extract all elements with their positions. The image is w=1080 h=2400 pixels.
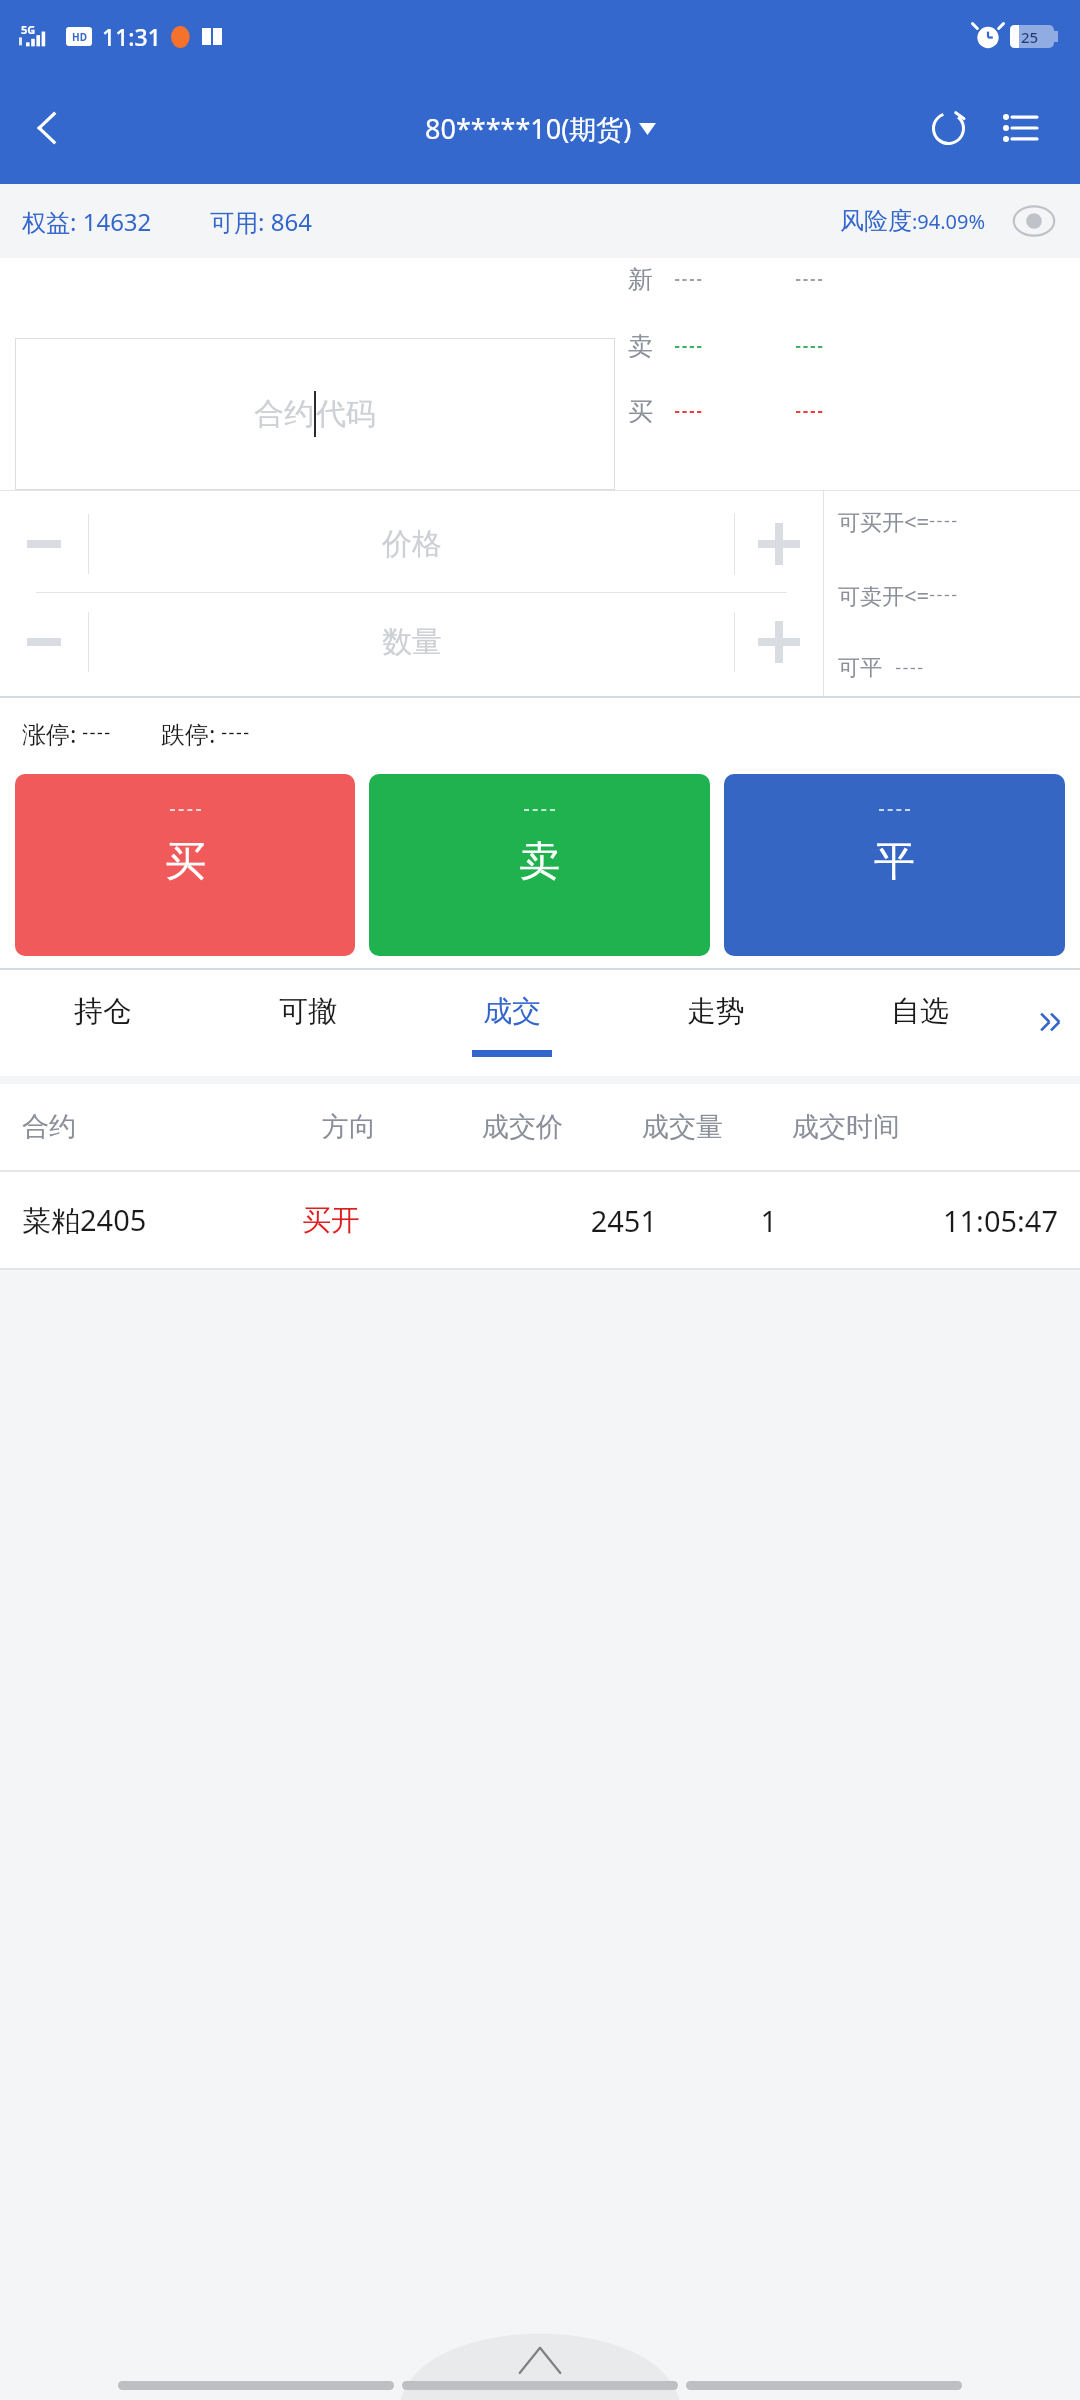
staticText: 持仓 — [74, 993, 132, 1030]
button[interactable]: 80*****10(期货) — [425, 110, 656, 147]
staticText: 涨停: — [22, 717, 77, 750]
staticText: 数量 — [382, 623, 442, 661]
staticText: 成交价 — [482, 1110, 642, 1144]
staticText: 成交时间 — [792, 1110, 900, 1144]
button[interactable]: 数量 — [89, 593, 734, 690]
button[interactable]: 成交 — [410, 968, 614, 1076]
button[interactable]: 合约 — [15, 338, 615, 490]
staticText: 成交量 — [642, 1110, 792, 1144]
staticText: 2451 — [457, 1201, 657, 1240]
staticText: 可买开<= — [838, 506, 930, 536]
staticText: 卖 — [519, 836, 560, 888]
button[interactable]: Decrease 价格 — [0, 495, 88, 592]
staticText: 1 — [657, 1201, 777, 1240]
button[interactable]: Navigation — [118, 2381, 394, 2390]
staticText: 25 — [1021, 27, 1039, 47]
staticText: 11:31 — [102, 21, 161, 52]
staticText: 合约 — [254, 395, 314, 433]
staticText: 可用: 864 — [210, 205, 312, 238]
button[interactable]: 价格 — [89, 495, 734, 592]
staticText: 跌停: — [161, 717, 216, 750]
button[interactable]: 菜粕2405 — [0, 1172, 1080, 1268]
button[interactable]: Back — [0, 72, 96, 184]
button[interactable]: Toggle visibility — [1008, 195, 1060, 247]
staticText: :94.09% — [912, 208, 986, 235]
staticText: 走势 — [687, 993, 745, 1030]
staticText: 11:05:47 — [777, 1201, 1058, 1240]
button[interactable]: Decrease 数量 — [0, 593, 88, 690]
button[interactable]: 卖 — [369, 774, 710, 956]
button[interactable]: 买 — [15, 774, 355, 956]
staticText: 可卖开<= — [838, 580, 930, 610]
button[interactable]: 持仓 — [0, 968, 205, 1076]
staticText: 卖 — [628, 331, 653, 362]
staticText: 80*****10(期货) — [425, 110, 632, 147]
staticText: 代码 — [316, 395, 376, 433]
staticText: 权益: 14632 — [22, 205, 152, 238]
staticText: 可平 — [838, 654, 882, 682]
staticText: 菜粕2405 — [22, 1200, 302, 1240]
button[interactable]: Increase 数量 — [735, 593, 823, 690]
button[interactable]: 可撤 — [205, 968, 410, 1076]
button[interactable]: 平 — [724, 774, 1065, 956]
button[interactable]: Navigation — [686, 2381, 962, 2390]
staticText: 平 — [874, 836, 915, 888]
button[interactable]: Menu — [984, 92, 1056, 164]
button[interactable]: Refresh — [912, 92, 984, 164]
staticText: 风险度 — [840, 206, 912, 236]
staticText: 5G — [21, 22, 36, 37]
button[interactable]: 自选 — [818, 968, 1022, 1076]
staticText: HD — [72, 30, 87, 44]
staticText: 新 — [628, 264, 653, 295]
staticText: 自选 — [891, 993, 949, 1030]
staticText: 可撤 — [279, 993, 337, 1030]
staticText: 买 — [628, 396, 653, 427]
staticText: 价格 — [382, 525, 442, 563]
staticText: 买开 — [302, 1202, 457, 1239]
button[interactable]: More tabs — [1022, 968, 1080, 1076]
staticText: 方向 — [322, 1110, 482, 1144]
button[interactable]: Navigation — [402, 2381, 678, 2390]
staticText: 成交 — [483, 993, 541, 1030]
staticText: 买 — [165, 836, 206, 888]
button[interactable]: 走势 — [614, 968, 818, 1076]
staticText: 合约 — [22, 1110, 322, 1144]
button[interactable]: Increase 价格 — [735, 495, 823, 592]
